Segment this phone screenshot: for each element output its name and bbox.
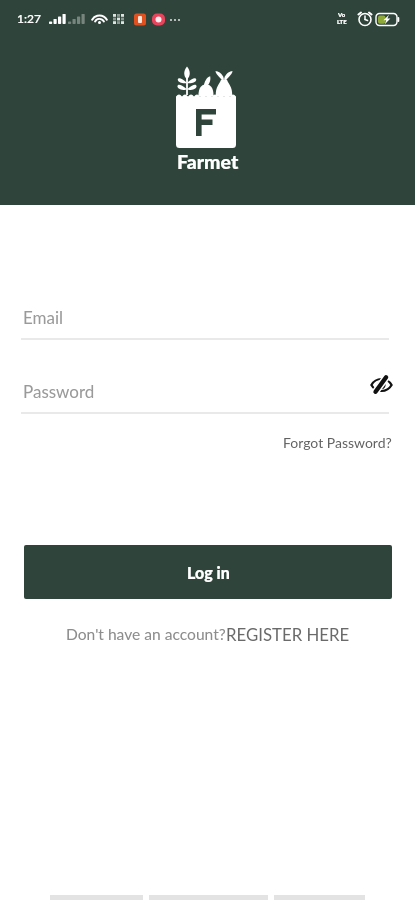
staticText: 1:27	[17, 11, 41, 25]
staticText: Log in	[187, 563, 230, 582]
button[interactable]: Show password	[362, 372, 400, 398]
staticText: Farmet	[177, 150, 239, 173]
button[interactable]: Forgot Password?	[279, 430, 396, 455]
button[interactable]: REGISTER HERE	[226, 624, 350, 644]
staticText: Password	[23, 381, 95, 401]
staticText: Email	[23, 307, 64, 327]
staticText: Vo	[338, 11, 346, 18]
staticText: LTE	[337, 18, 347, 25]
staticText: Don't have an account?	[66, 625, 226, 644]
button[interactable]: Log in	[24, 545, 392, 599]
